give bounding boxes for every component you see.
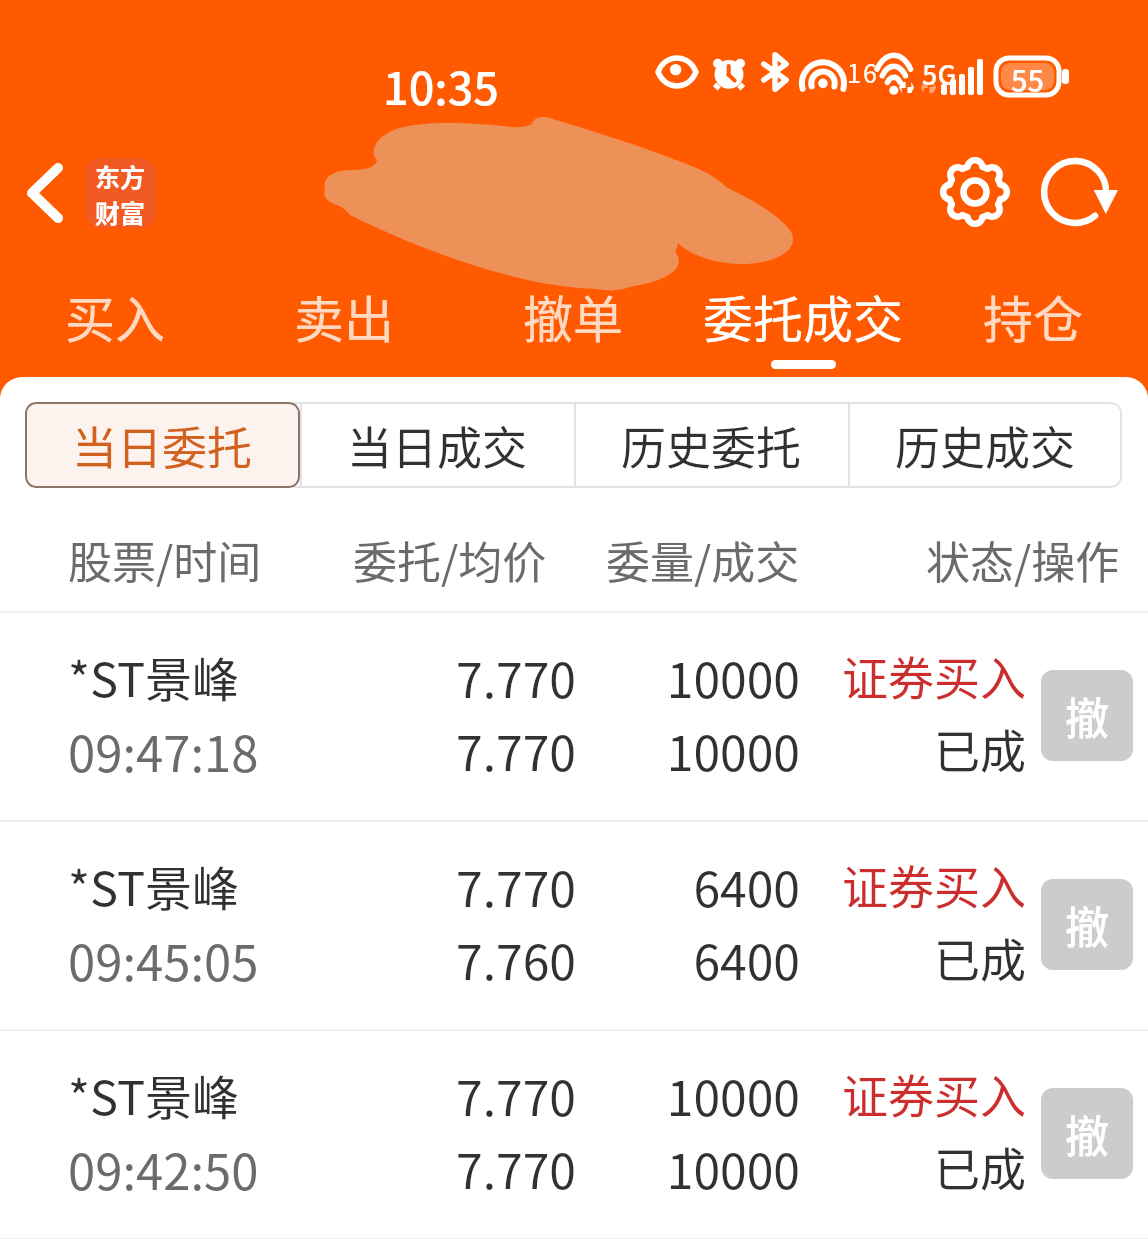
button[interactable]: 买入 [0, 280, 229, 377]
staticText: 7.770 [0, 715, 576, 785]
staticText: 委量/成交 [606, 528, 800, 592]
staticText: 撤 [1065, 893, 1109, 957]
staticText: 证券买入 [0, 1060, 1026, 1127]
staticText: 09:42:50 [68, 1133, 259, 1204]
staticText: 股票/时间 [68, 528, 262, 592]
button[interactable]: 当日委托 [25, 402, 300, 488]
staticText: 已成 [0, 1133, 1026, 1200]
staticText: 买入 [65, 280, 165, 352]
staticText: 持仓 [983, 280, 1083, 352]
staticText: 已成 [0, 715, 1026, 782]
button[interactable]: 持仓 [918, 280, 1148, 377]
staticText: 委托/均价 [353, 528, 547, 592]
staticText: 东方 [95, 158, 146, 194]
staticText: 证券买入 [0, 851, 1026, 918]
staticText: 7.770 [0, 1133, 576, 1203]
button[interactable]: *ST景峰 [0, 822, 1148, 1031]
staticText: 55 [1011, 58, 1045, 95]
staticText: 历史委托 [621, 413, 802, 478]
button[interactable]: East Money [85, 158, 156, 228]
staticText: 当日成交 [347, 413, 528, 478]
button[interactable]: 委托成交 [688, 280, 918, 377]
staticText: *ST景峰 [68, 1060, 240, 1128]
staticText: 09:47:18 [68, 715, 259, 786]
staticText: 状态/操作 [926, 528, 1120, 592]
staticText: 当日委托 [72, 413, 253, 478]
staticText: 撤 [1065, 684, 1109, 748]
staticText: 7.760 [0, 924, 576, 994]
staticText: 1 [847, 54, 861, 90]
staticText: 已成 [0, 924, 1026, 991]
staticText: 卖出 [294, 280, 394, 352]
button[interactable]: *ST景峰 [0, 1031, 1148, 1239]
staticText: *ST景峰 [68, 851, 240, 919]
staticText: 撤单 [523, 280, 623, 352]
button[interactable]: 撤 [1041, 879, 1133, 970]
button[interactable]: 当日成交 [300, 402, 574, 488]
button[interactable]: 撤 [1041, 670, 1133, 761]
button[interactable]: 撤单 [458, 280, 688, 377]
button[interactable]: Settings [937, 154, 1013, 230]
staticText: 委托成交 [703, 280, 903, 352]
staticText: 10:35 [383, 53, 500, 118]
staticText: 10000 [0, 1060, 800, 1130]
button[interactable]: Back [8, 152, 82, 234]
staticText: 证券买入 [0, 642, 1026, 709]
staticText: 撤 [1065, 1102, 1109, 1166]
staticText: 7.770 [0, 642, 576, 712]
button[interactable]: 历史委托 [574, 402, 848, 488]
staticText: *ST景峰 [68, 642, 240, 710]
button[interactable]: 历史成交 [848, 402, 1122, 488]
staticText: 6 [863, 54, 877, 90]
staticText: 10000 [0, 1133, 800, 1203]
staticText: 财富 [95, 194, 146, 228]
button[interactable]: Refresh [1044, 154, 1120, 230]
staticText: 7.770 [0, 1060, 576, 1130]
staticText: 10000 [0, 715, 800, 785]
staticText: 历史成交 [895, 413, 1076, 478]
staticText: 6400 [0, 924, 800, 994]
button[interactable]: 卖出 [229, 280, 458, 377]
staticText: 09:45:05 [68, 924, 259, 995]
staticText: 7.770 [0, 851, 576, 921]
staticText: 10000 [0, 642, 800, 712]
staticText: 6400 [0, 851, 800, 921]
button[interactable]: *ST景峰 [0, 613, 1148, 822]
staticText: 5G [922, 54, 957, 93]
button[interactable]: 撤 [1041, 1088, 1133, 1179]
